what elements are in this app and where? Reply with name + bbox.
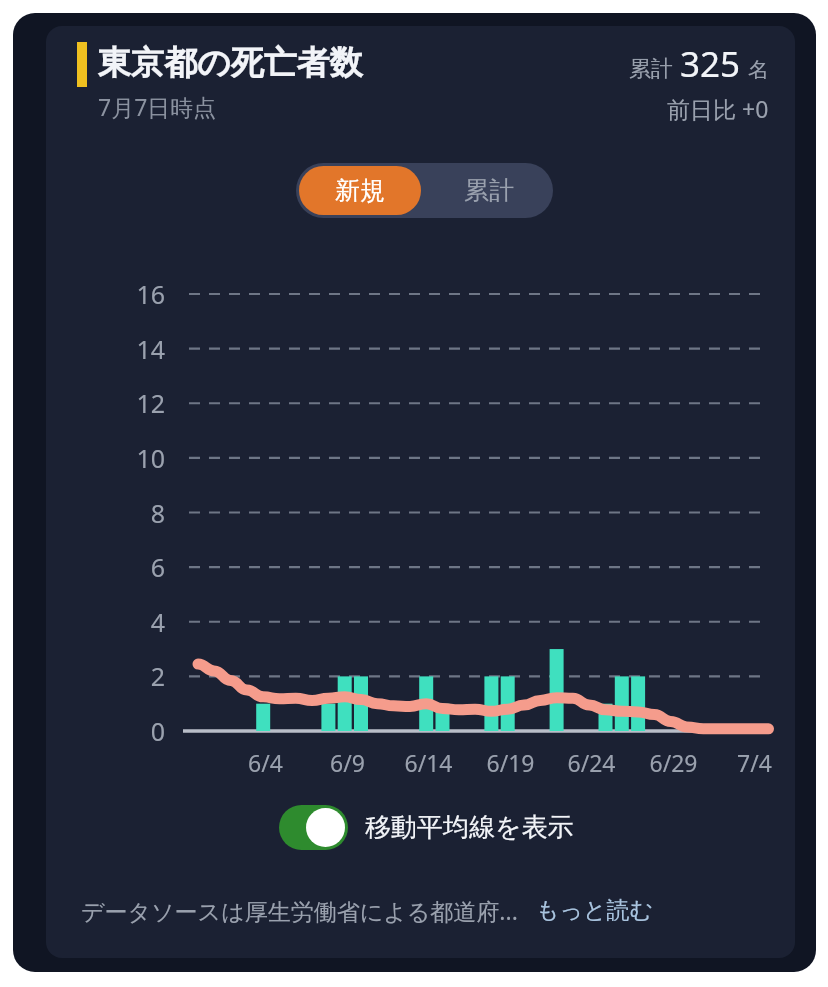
staticText: データソースは厚生労働省による都道府... bbox=[81, 895, 518, 926]
staticText: 2 bbox=[150, 659, 165, 693]
staticText: 8 bbox=[150, 496, 165, 530]
staticText: 名 bbox=[748, 57, 769, 83]
staticText: もっと読む bbox=[536, 896, 654, 925]
staticText: 14 bbox=[136, 332, 165, 366]
button[interactable]: 移動平均線を表示 bbox=[279, 805, 574, 850]
staticText: 累計 bbox=[464, 175, 514, 206]
staticText: 6/4 bbox=[248, 747, 283, 778]
staticText: 325 bbox=[680, 40, 741, 88]
staticText: 6/19 bbox=[486, 747, 535, 778]
staticText: 6/29 bbox=[649, 747, 698, 778]
staticText: 7月7日時点 bbox=[98, 91, 217, 122]
button[interactable]: 累計 bbox=[424, 163, 553, 218]
button[interactable]: 新規 bbox=[299, 166, 421, 215]
staticText: 0 bbox=[150, 714, 165, 748]
staticText: 移動平均線を表示 bbox=[365, 811, 574, 844]
staticText: 6 bbox=[150, 550, 165, 584]
staticText: 12 bbox=[136, 386, 165, 420]
staticText: 16 bbox=[136, 277, 165, 311]
staticText: 7/4 bbox=[737, 747, 772, 778]
staticText: 6/14 bbox=[404, 747, 453, 778]
button[interactable]: もっと読む bbox=[536, 896, 654, 925]
staticText: 新規 bbox=[335, 175, 385, 206]
staticText: 6/9 bbox=[330, 747, 365, 778]
staticText: 10 bbox=[136, 441, 165, 475]
staticText: 累計 bbox=[629, 55, 673, 83]
staticText: 前日比 +0 bbox=[667, 93, 769, 124]
staticText: 6/24 bbox=[567, 747, 616, 778]
staticText: 東京都の死亡者数 bbox=[98, 42, 363, 84]
staticText: 4 bbox=[150, 605, 165, 639]
